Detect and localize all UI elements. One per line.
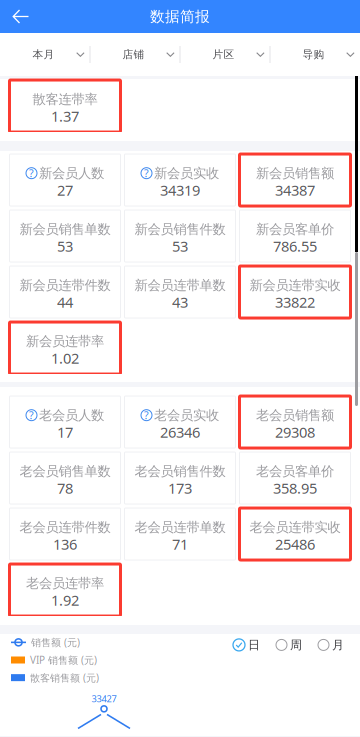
staticText: 33427: [91, 692, 116, 705]
staticText: 29308: [275, 422, 315, 442]
staticText: 53: [172, 236, 188, 256]
staticText: 17: [57, 422, 73, 442]
staticText: 散客连带率: [32, 91, 97, 107]
button[interactable]: ?: [9, 154, 120, 206]
button[interactable]: 导购: [270, 33, 359, 76]
button[interactable]: 老会员销售单数: [9, 452, 120, 504]
staticText: 老会员客单价: [256, 463, 334, 479]
staticText: 新会员连带件数: [19, 277, 110, 293]
staticText: 78: [57, 478, 73, 498]
staticText: 月: [332, 638, 344, 652]
staticText: 43: [172, 292, 188, 312]
staticText: 老会员实收: [154, 407, 219, 423]
staticText: 新会员销售件数: [134, 221, 225, 237]
staticText: 173: [168, 478, 192, 498]
button[interactable]: 新会员连带率: [9, 322, 120, 374]
button[interactable]: 新会员销售额: [239, 154, 350, 206]
staticText: 日: [248, 638, 260, 652]
staticText: 786.55: [273, 236, 317, 256]
button[interactable]: 新会员客单价: [239, 210, 350, 262]
button[interactable]: 本月: [0, 33, 89, 76]
staticText: 新会员连带实收: [249, 277, 340, 293]
button[interactable]: 新会员连带单数: [124, 266, 235, 318]
button[interactable]: 老会员连带率: [9, 564, 120, 616]
button[interactable]: 店铺: [90, 33, 179, 76]
button[interactable]: 片区: [180, 33, 269, 76]
staticText: 25486: [275, 534, 315, 554]
button[interactable]: 老会员销售额: [239, 396, 350, 448]
button[interactable]: 月: [318, 638, 344, 652]
staticText: 销售额 (元): [31, 636, 80, 649]
staticText: 34387: [275, 180, 315, 200]
staticText: 数据简报: [150, 7, 210, 25]
staticText: ?: [29, 166, 34, 180]
staticText: 新会员连带率: [26, 333, 104, 349]
staticText: 老会员销售单数: [19, 463, 110, 479]
staticText: 新会员销售额: [256, 165, 334, 181]
staticText: 周: [290, 638, 302, 652]
button[interactable]: 周: [276, 638, 302, 652]
staticText: 1.02: [51, 348, 79, 368]
staticText: 新会员销售单数: [19, 221, 110, 237]
staticText: 26346: [160, 422, 200, 442]
staticText: 老会员人数: [39, 407, 104, 423]
button[interactable]: 新会员销售件数: [124, 210, 235, 262]
staticText: 44: [57, 292, 73, 312]
button[interactable]: 散客连带率: [9, 80, 120, 132]
staticText: 店铺: [122, 48, 144, 61]
button[interactable]: 老会员客单价: [239, 452, 350, 504]
button[interactable]: 老会员连带件数: [9, 508, 120, 560]
button[interactable]: Back: [0, 0, 42, 33]
staticText: 33822: [275, 292, 315, 312]
staticText: 新会员人数: [39, 165, 104, 181]
button[interactable]: ?: [124, 154, 235, 206]
staticText: 老会员连带率: [26, 575, 104, 591]
button[interactable]: 老会员销售件数: [124, 452, 235, 504]
staticText: 1.37: [51, 106, 79, 126]
staticText: 老会员销售额: [256, 407, 334, 423]
staticText: 71: [172, 534, 188, 554]
staticText: VIP 销售额 (元): [30, 653, 97, 667]
staticText: 1.92: [51, 590, 79, 610]
staticText: 老会员销售件数: [134, 463, 225, 479]
button[interactable]: 新会员销售单数: [9, 210, 120, 262]
staticText: 老会员连带件数: [19, 519, 110, 535]
button[interactable]: ?: [124, 396, 235, 448]
staticText: 27: [57, 180, 73, 200]
button[interactable]: ?: [9, 396, 120, 448]
staticText: 53: [57, 236, 73, 256]
staticText: 老会员连带实收: [249, 519, 340, 535]
staticText: 导购: [302, 48, 324, 61]
staticText: 新会员连带单数: [134, 277, 225, 293]
staticText: 片区: [212, 48, 234, 61]
staticText: 358.95: [273, 478, 317, 498]
staticText: 本月: [32, 48, 54, 61]
button[interactable]: 新会员连带件数: [9, 266, 120, 318]
staticText: 老会员连带单数: [134, 519, 225, 535]
staticText: 新会员实收: [154, 165, 219, 181]
button[interactable]: 老会员连带单数: [124, 508, 235, 560]
staticText: 136: [53, 534, 77, 554]
staticText: ?: [144, 408, 149, 422]
staticText: ?: [29, 408, 34, 422]
staticText: 散客销售额 (元): [30, 671, 99, 684]
staticText: 34319: [160, 180, 200, 200]
button[interactable]: 老会员连带实收: [239, 508, 350, 560]
button[interactable]: 日: [233, 638, 260, 652]
button[interactable]: 新会员连带实收: [239, 266, 350, 318]
staticText: 新会员客单价: [256, 221, 334, 237]
staticText: ?: [144, 166, 149, 180]
